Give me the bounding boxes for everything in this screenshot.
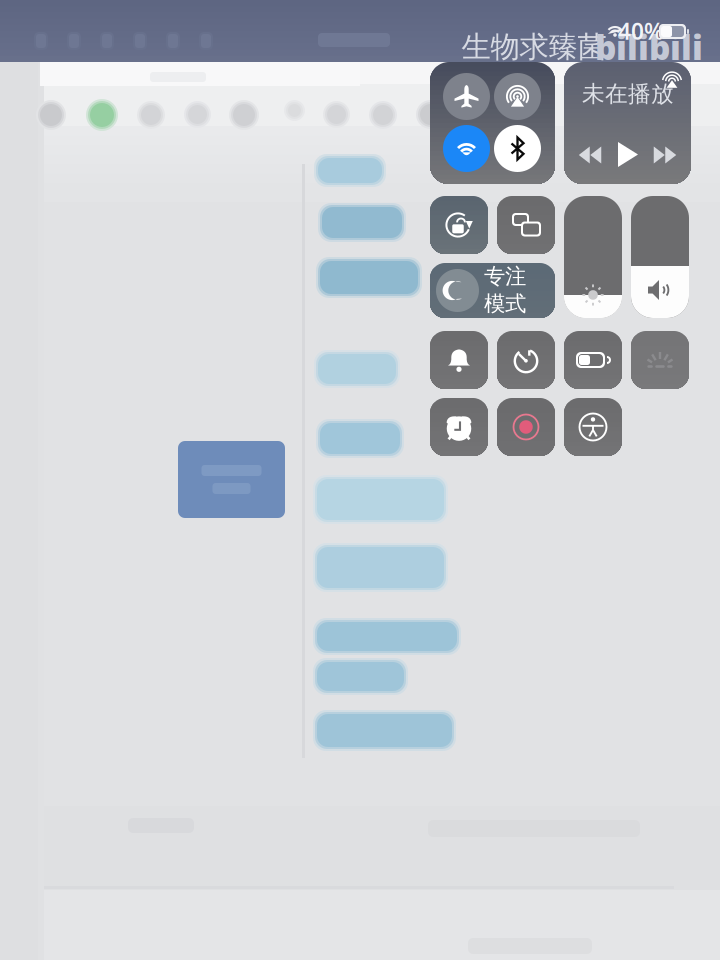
button[interactable]: AirDrop (494, 73, 541, 120)
button[interactable]: Hearing (430, 331, 488, 389)
button[interactable]: Airplane Mode (443, 73, 490, 120)
button[interactable]: Rotation Lock (430, 196, 488, 254)
staticText: 40% (618, 16, 664, 46)
button[interactable]: Wi-Fi (443, 125, 490, 172)
button[interactable]: Timer (497, 331, 555, 389)
staticText: 模式 (484, 290, 526, 317)
button[interactable]: Screen Recording (497, 398, 555, 456)
button[interactable]: Volume (631, 196, 689, 318)
staticText: 专注 (484, 263, 526, 289)
button[interactable]: Accessibility (564, 398, 622, 456)
button[interactable]: Screen Mirroring (497, 196, 555, 254)
button[interactable]: Flashlight (631, 331, 689, 389)
button[interactable]: Focus (430, 263, 555, 318)
button[interactable]: Alarm (430, 398, 488, 456)
button[interactable]: Now Playing (564, 62, 691, 184)
button[interactable]: Low Power Mode (564, 331, 622, 389)
button[interactable]: Bluetooth (494, 125, 541, 172)
staticText: bilibili (595, 25, 703, 69)
staticText: 生物求臻菌 (461, 29, 606, 65)
staticText: 未在播放 (582, 80, 674, 108)
button[interactable]: Brightness (564, 196, 622, 318)
